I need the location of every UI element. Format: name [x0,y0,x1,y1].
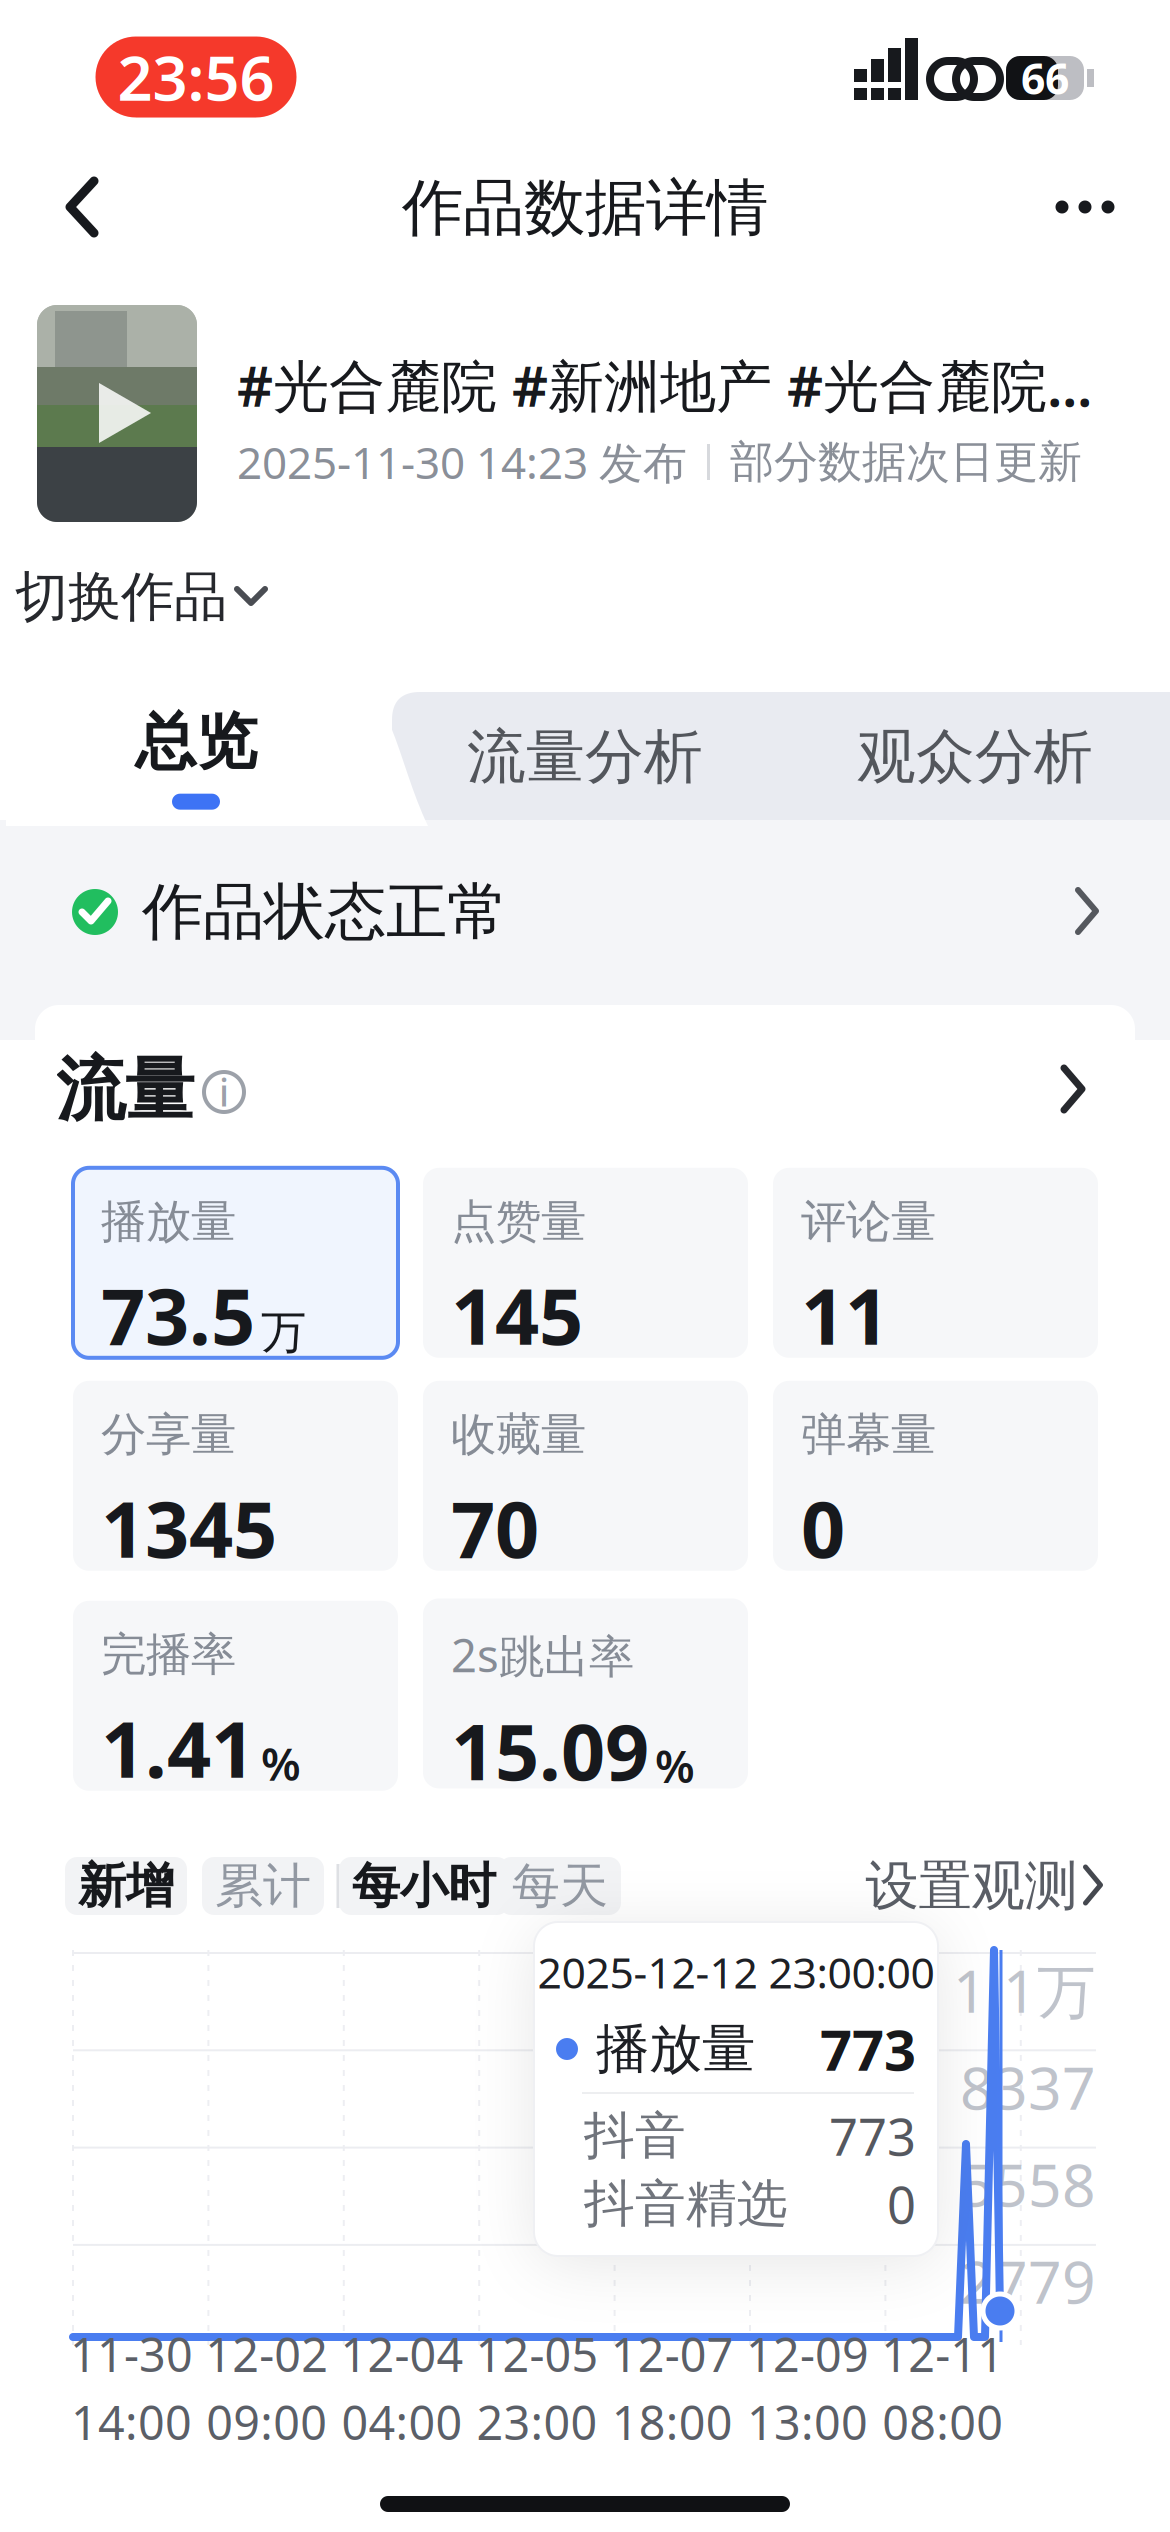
staticText: 13:00 [747,2391,868,2453]
staticText: 145 [451,1263,583,1366]
button[interactable]: 收藏量 [423,1385,748,1575]
button[interactable]: 作品状态正常 [72,867,1098,957]
staticText: i [219,1067,229,1117]
staticText: 15.09 [451,1699,649,1802]
staticText: 04:00 [341,2391,462,2453]
staticText: 08:00 [882,2391,1003,2453]
staticText: 累计 [215,1856,311,1915]
staticText: 2025-11-30 14:23 发布 [237,433,687,491]
staticText: 抖音 [584,2105,686,2167]
button[interactable]: Back [64,177,104,237]
staticText: 总览 [135,704,257,780]
staticText: 作品数据详情 [402,170,768,246]
staticText: 73.5 [101,1263,255,1366]
button[interactable]: Play video [37,305,197,522]
staticText: 完播率 [101,1627,236,1682]
staticText: 18:00 [612,2391,733,2453]
button[interactable]: 2s跳出率 [423,1605,748,1795]
staticText: #光合麓院 #新洲地产 #光合麓院品质住宅 … [237,348,1137,422]
staticText: 播放量 [596,2016,755,2082]
button[interactable]: 完播率 [73,1605,398,1795]
staticText: 1.41 [101,1696,255,1799]
staticText: 切换作品 [15,564,227,630]
staticText: 23:56 [117,36,274,118]
staticText: 2779 [960,2242,1096,2320]
staticText: 5558 [960,2145,1096,2223]
staticText: 观众分析 [857,721,1093,793]
button[interactable]: 评论量 [773,1172,1098,1362]
button[interactable]: 每小时 [339,1857,509,1915]
staticText: 收藏量 [451,1407,586,1462]
staticText: 0 [801,1476,845,1579]
button[interactable]: 总览 [135,704,257,810]
staticText: 分享量 [101,1407,236,1462]
staticText: 12-02 [205,2323,328,2385]
staticText: 评论量 [801,1194,936,1249]
button[interactable]: Time / recording indicator [95,36,296,117]
button[interactable]: 新增 [65,1857,187,1915]
button[interactable]: 切换作品 [15,564,265,630]
staticText: 1345 [101,1476,277,1579]
staticText: 每小时 [352,1856,496,1915]
staticText: 70 [451,1476,539,1579]
staticText: 12-04 [340,2323,463,2385]
staticText: % [261,1733,301,1793]
staticText: 每天 [512,1856,608,1915]
button[interactable]: 每天 [499,1857,621,1915]
button[interactable]: 设置观测 [865,1853,1102,1919]
button[interactable]: 点赞量 [423,1172,748,1362]
staticText: 773 [820,2012,916,2086]
staticText: 12-09 [746,2323,869,2385]
button[interactable]: 分享量 [73,1385,398,1575]
staticText: 流量分析 [467,721,703,793]
staticText: 作品状态正常 [142,874,508,950]
button[interactable]: 流量分析 [415,697,755,817]
staticText: 14:00 [71,2391,192,2453]
staticText: 点赞量 [451,1194,586,1249]
staticText: 流量 [56,1047,194,1133]
button[interactable]: 观众分析 [805,697,1145,817]
staticText: 1.1万 [953,1951,1096,2029]
button[interactable]: 播放量 [73,1172,398,1362]
staticText: 抖音精选 [584,2173,788,2235]
staticText: 12-05 [476,2323,599,2385]
staticText: 12-07 [611,2323,734,2385]
staticText: 新增 [78,1856,174,1915]
staticText: 773 [829,2102,916,2170]
staticText: % [655,1735,695,1796]
staticText: 8337 [960,2048,1096,2126]
staticText: 设置观测 [865,1853,1077,1919]
button[interactable]: 弹幕量 [773,1385,1098,1575]
staticText: 弹幕量 [801,1407,936,1462]
staticText: 09:00 [206,2391,327,2453]
button[interactable]: Traffic details [1064,1068,1084,1112]
staticText: 11-30 [70,2323,193,2385]
button[interactable]: 累计 [202,1857,324,1915]
staticText: 0 [887,2170,916,2238]
staticText: 部分数据次日更新 [730,435,1082,489]
staticText: 2s跳出率 [451,1624,634,1685]
staticText: 播放量 [101,1194,236,1249]
staticText: 66 [1021,50,1069,106]
staticText: 11 [801,1263,889,1366]
staticText: 12-11 [881,2323,1004,2385]
button[interactable]: More [1055,200,1114,213]
staticText: 万 [261,1304,306,1360]
staticText: 23:00 [477,2391,598,2453]
staticText: 2025-12-12 23:00:00 [537,1944,934,2000]
